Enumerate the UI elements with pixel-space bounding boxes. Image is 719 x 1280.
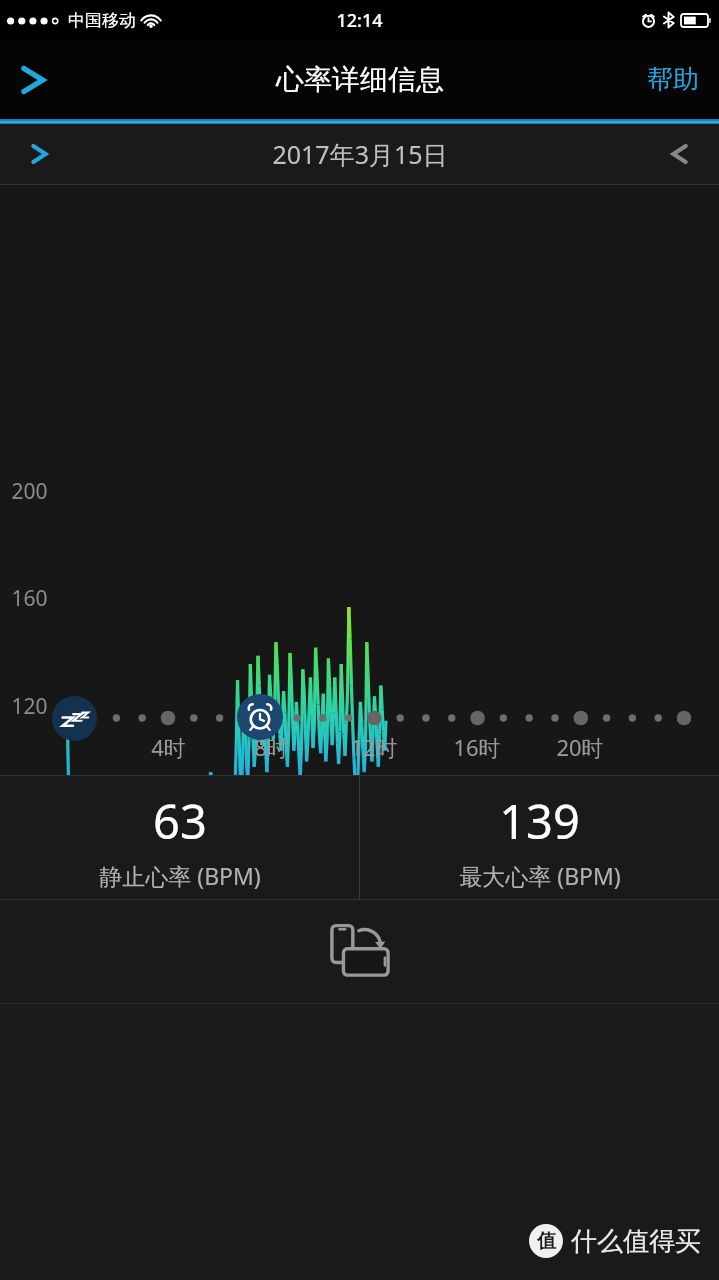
staticText: 20时 bbox=[556, 732, 604, 762]
button[interactable]: 旋转屏幕 bbox=[317, 913, 403, 991]
staticText: 心率详细信息 bbox=[276, 62, 444, 97]
button[interactable]: 闹钟 bbox=[237, 694, 283, 740]
staticText: 2017年3月15日 bbox=[272, 137, 448, 171]
staticText: 12时 bbox=[350, 732, 398, 762]
button[interactable]: 帮助 bbox=[627, 40, 719, 119]
button[interactable]: 后一天 bbox=[643, 124, 719, 184]
button[interactable]: 返回 bbox=[0, 40, 64, 119]
staticText: 120 bbox=[11, 692, 48, 721]
staticText: 12:14 bbox=[336, 8, 383, 33]
staticText: 16时 bbox=[453, 732, 501, 762]
staticText: 帮助 bbox=[647, 63, 699, 96]
button[interactable]: 63 bbox=[0, 776, 359, 891]
staticText: 最大心率 (BPM) bbox=[459, 860, 621, 891]
staticText: 什么值得买 bbox=[571, 1225, 701, 1258]
staticText: 4时 bbox=[151, 732, 186, 762]
staticText: 200 bbox=[11, 477, 48, 506]
staticText: 63 bbox=[153, 789, 207, 853]
staticText: 139 bbox=[499, 789, 580, 853]
staticText: 160 bbox=[11, 584, 48, 613]
button[interactable]: 睡眠 bbox=[52, 696, 97, 741]
button[interactable]: 139 bbox=[360, 776, 719, 891]
staticText: 静止心率 (BPM) bbox=[99, 860, 261, 891]
button[interactable]: 前一天 bbox=[0, 124, 76, 184]
staticText: 值 bbox=[537, 1229, 556, 1253]
staticText: 中国移动 bbox=[68, 10, 136, 31]
staticText: 8时 bbox=[254, 732, 289, 762]
